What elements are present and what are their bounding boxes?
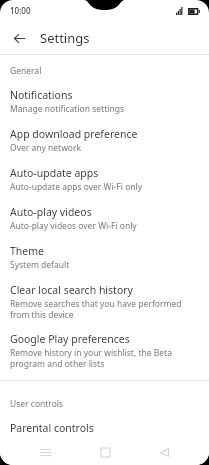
button[interactable]: Google Play preferences [0,324,209,373]
staticText: Auto-play videos over Wi-Fi only [10,220,137,232]
staticText: Clear local search history [10,283,133,297]
staticText: Settings [40,29,90,47]
button[interactable]: Auto-play videos [0,197,209,236]
button[interactable]: App download preference [0,119,209,158]
button[interactable]: Clear local search history [0,275,209,324]
staticText: 10:00 [10,5,31,16]
button[interactable]: Auto-update apps [0,158,209,197]
staticText: Manage notification settings [10,103,124,115]
staticText: Remove history in your wishlist, the Bet… [10,347,199,369]
staticText: Auto-update apps [10,166,99,180]
button[interactable]: Notifications [0,80,209,119]
staticText: App download preference [10,127,138,141]
button[interactable]: Back [6,25,32,51]
button[interactable]: Home [91,439,119,465]
staticText: Auto-play videos [10,205,92,219]
staticText: Remove searches that you have performed … [10,298,199,320]
staticText: Notifications [10,88,73,102]
staticText: General [10,65,42,77]
staticText: User controls [10,398,64,410]
button[interactable]: Parental controls [0,413,209,439]
button[interactable]: Recent apps [31,439,59,465]
button[interactable]: Back [150,439,178,465]
staticText: System default [10,259,70,271]
staticText: Auto-update apps over Wi-Fi only [10,181,143,193]
staticText: Google Play preferences [10,332,130,346]
staticText: Parental controls [10,421,94,435]
staticText: Theme [10,244,44,258]
staticText: Over any network [10,142,82,154]
button[interactable]: Theme [0,236,209,275]
